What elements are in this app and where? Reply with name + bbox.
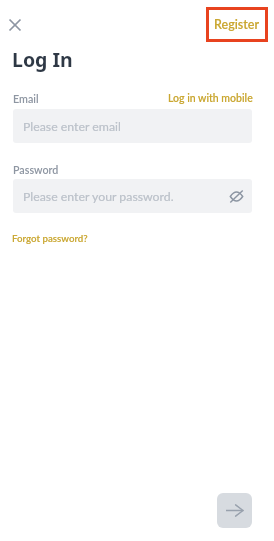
staticText: Please enter your password. <box>23 189 174 204</box>
button[interactable]: Show password <box>224 184 248 208</box>
staticText: Register <box>214 17 260 32</box>
staticText: Log In <box>12 46 73 73</box>
button[interactable]: Please enter email <box>13 109 252 143</box>
button[interactable]: Close <box>3 13 27 37</box>
button[interactable]: Please enter your password. <box>13 179 252 213</box>
button[interactable]: Register <box>206 7 268 42</box>
staticText: Email <box>13 92 39 105</box>
staticText: Please enter email <box>23 119 121 134</box>
staticText: Forgot password? <box>12 232 88 244</box>
staticText: Log in with mobile <box>168 92 253 105</box>
button[interactable]: Log in with mobile <box>168 92 253 105</box>
button[interactable]: Forgot password? <box>12 232 88 244</box>
button[interactable]: Next <box>217 493 252 528</box>
staticText: Password <box>13 163 59 176</box>
